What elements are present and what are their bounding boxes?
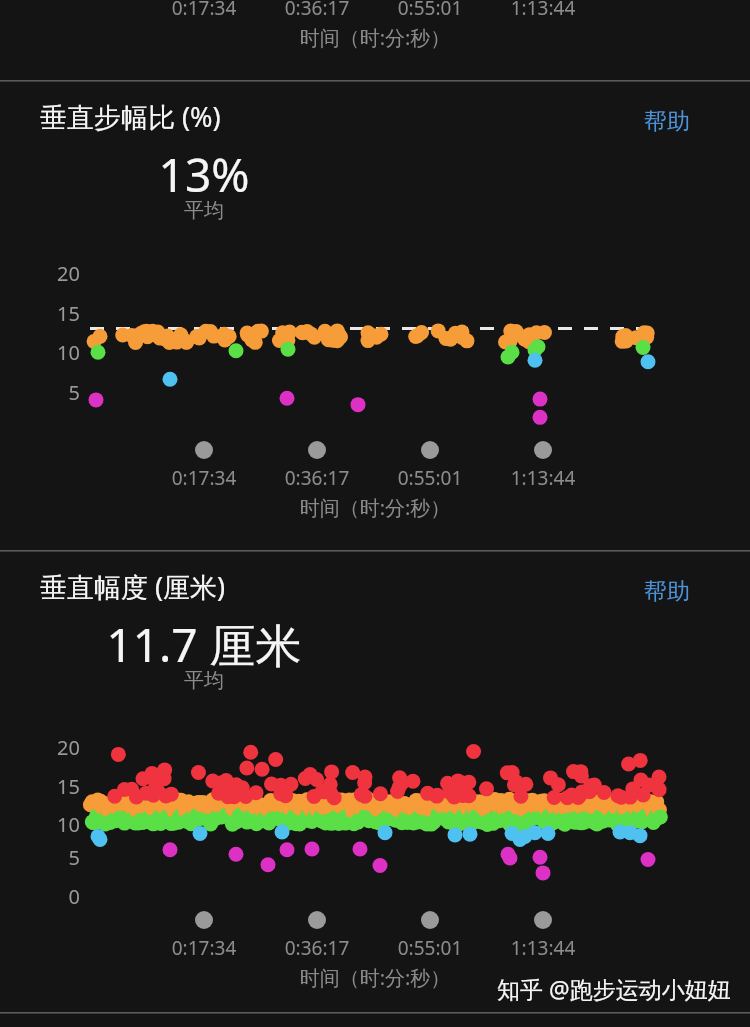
staticText: 时间（时:分:秒） <box>215 494 535 521</box>
staticText: 时间（时:分:秒） <box>215 964 535 991</box>
button[interactable]: 帮助 <box>644 107 690 136</box>
staticText: 垂直步幅比 (%) <box>40 98 221 135</box>
staticText: 时间（时:分:秒） <box>215 24 535 51</box>
staticText: 0:36:17 <box>257 0 377 21</box>
button[interactable]: 知乎 @跑步运动小妞妞 <box>497 973 731 1004</box>
staticText: 1:13:44 <box>483 465 603 491</box>
button[interactable]: 垂直步幅比 (%) <box>40 98 221 135</box>
staticText: 0:36:17 <box>257 935 377 961</box>
staticText: 0 <box>20 883 80 910</box>
staticText: 15 <box>20 300 80 327</box>
staticText: 0:55:01 <box>370 465 490 491</box>
staticText: 帮助 <box>644 107 690 136</box>
staticText: 5 <box>20 379 80 406</box>
staticText: 20 <box>20 734 80 761</box>
staticText: 10 <box>20 811 80 838</box>
staticText: 平均 <box>144 668 264 693</box>
staticText: 0:55:01 <box>370 0 490 21</box>
staticText: 0:55:01 <box>370 935 490 961</box>
staticText: 0:17:34 <box>144 935 264 961</box>
staticText: 10 <box>20 339 80 366</box>
staticText: 0:17:34 <box>144 465 264 491</box>
staticText: 垂直幅度 (厘米) <box>40 568 226 605</box>
staticText: 0:36:17 <box>257 465 377 491</box>
staticText: 平均 <box>144 198 264 223</box>
staticText: 1:13:44 <box>483 935 603 961</box>
staticText: 知乎 @跑步运动小妞妞 <box>497 973 731 1004</box>
button[interactable]: 帮助 <box>644 577 690 606</box>
staticText: 15 <box>20 773 80 800</box>
staticText: 11.7 厘米 <box>54 613 354 676</box>
staticText: 0:17:34 <box>144 0 264 21</box>
staticText: 13% <box>104 143 304 206</box>
staticText: 20 <box>20 260 80 287</box>
staticText: 帮助 <box>644 577 690 606</box>
staticText: 5 <box>20 844 80 871</box>
button[interactable]: 垂直幅度 (厘米) <box>40 568 226 605</box>
staticText: 1:13:44 <box>483 0 603 21</box>
